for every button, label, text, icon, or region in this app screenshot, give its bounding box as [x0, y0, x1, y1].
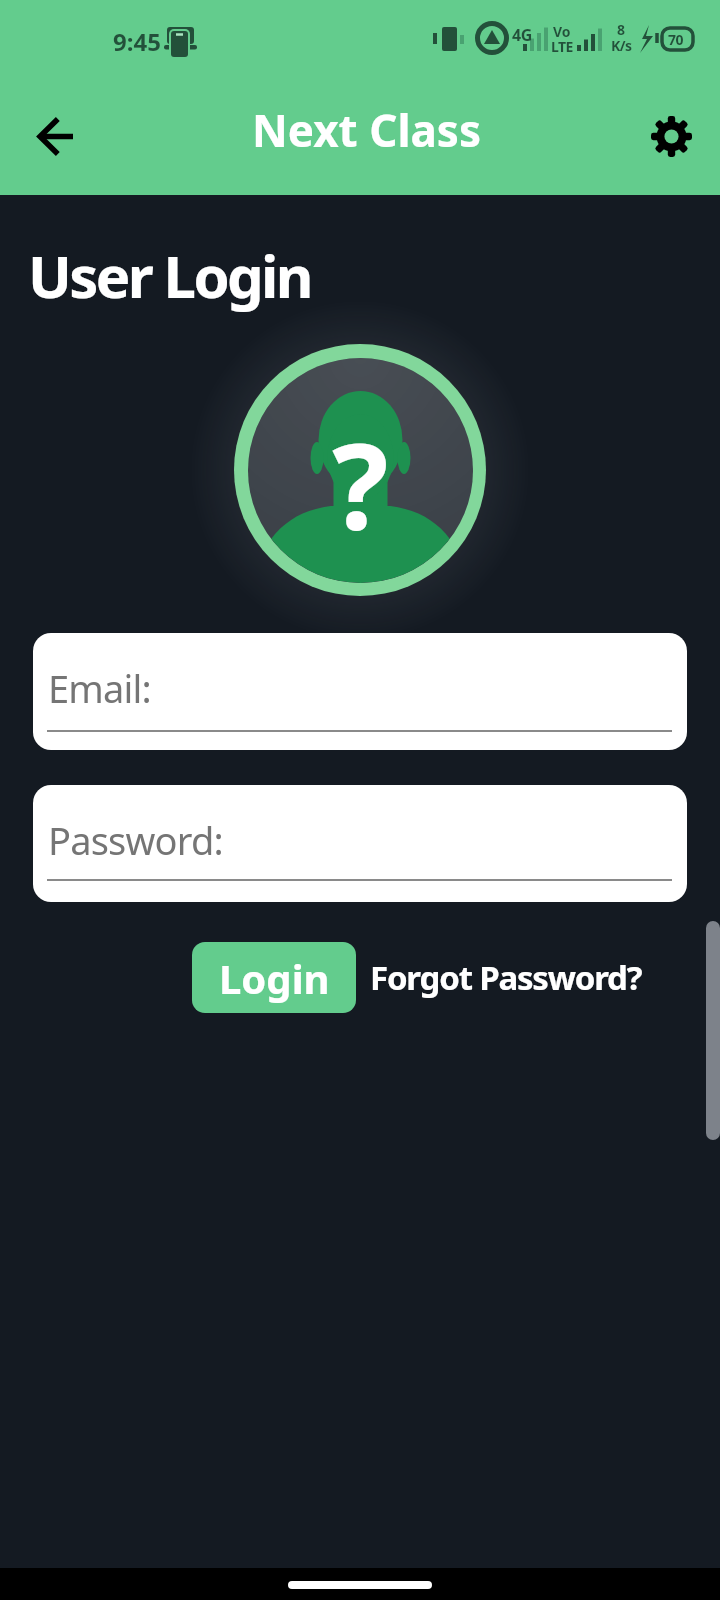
button[interactable]: Email:: [33, 633, 687, 750]
staticText: Password:: [48, 814, 223, 866]
button[interactable]: Password:: [33, 785, 687, 902]
staticText: K/s: [611, 36, 632, 55]
button[interactable]: Login: [192, 942, 356, 1013]
staticText: LTE: [551, 37, 573, 56]
staticText: 70: [668, 30, 684, 49]
button[interactable]: [645, 110, 697, 162]
staticText: Forgot Password?: [370, 955, 642, 1000]
staticText: Email:: [48, 662, 151, 714]
staticText: Login: [219, 951, 330, 1005]
staticText: 8: [617, 20, 626, 39]
staticText: User Login: [28, 236, 311, 315]
button[interactable]: Forgot Password?: [370, 942, 642, 1013]
staticText: 4G: [512, 24, 532, 46]
button[interactable]: [30, 110, 82, 162]
staticText: 9:45: [113, 25, 161, 58]
staticText: ?: [332, 403, 389, 564]
staticText: Vo: [553, 22, 571, 41]
staticText: Next Class: [252, 100, 482, 160]
